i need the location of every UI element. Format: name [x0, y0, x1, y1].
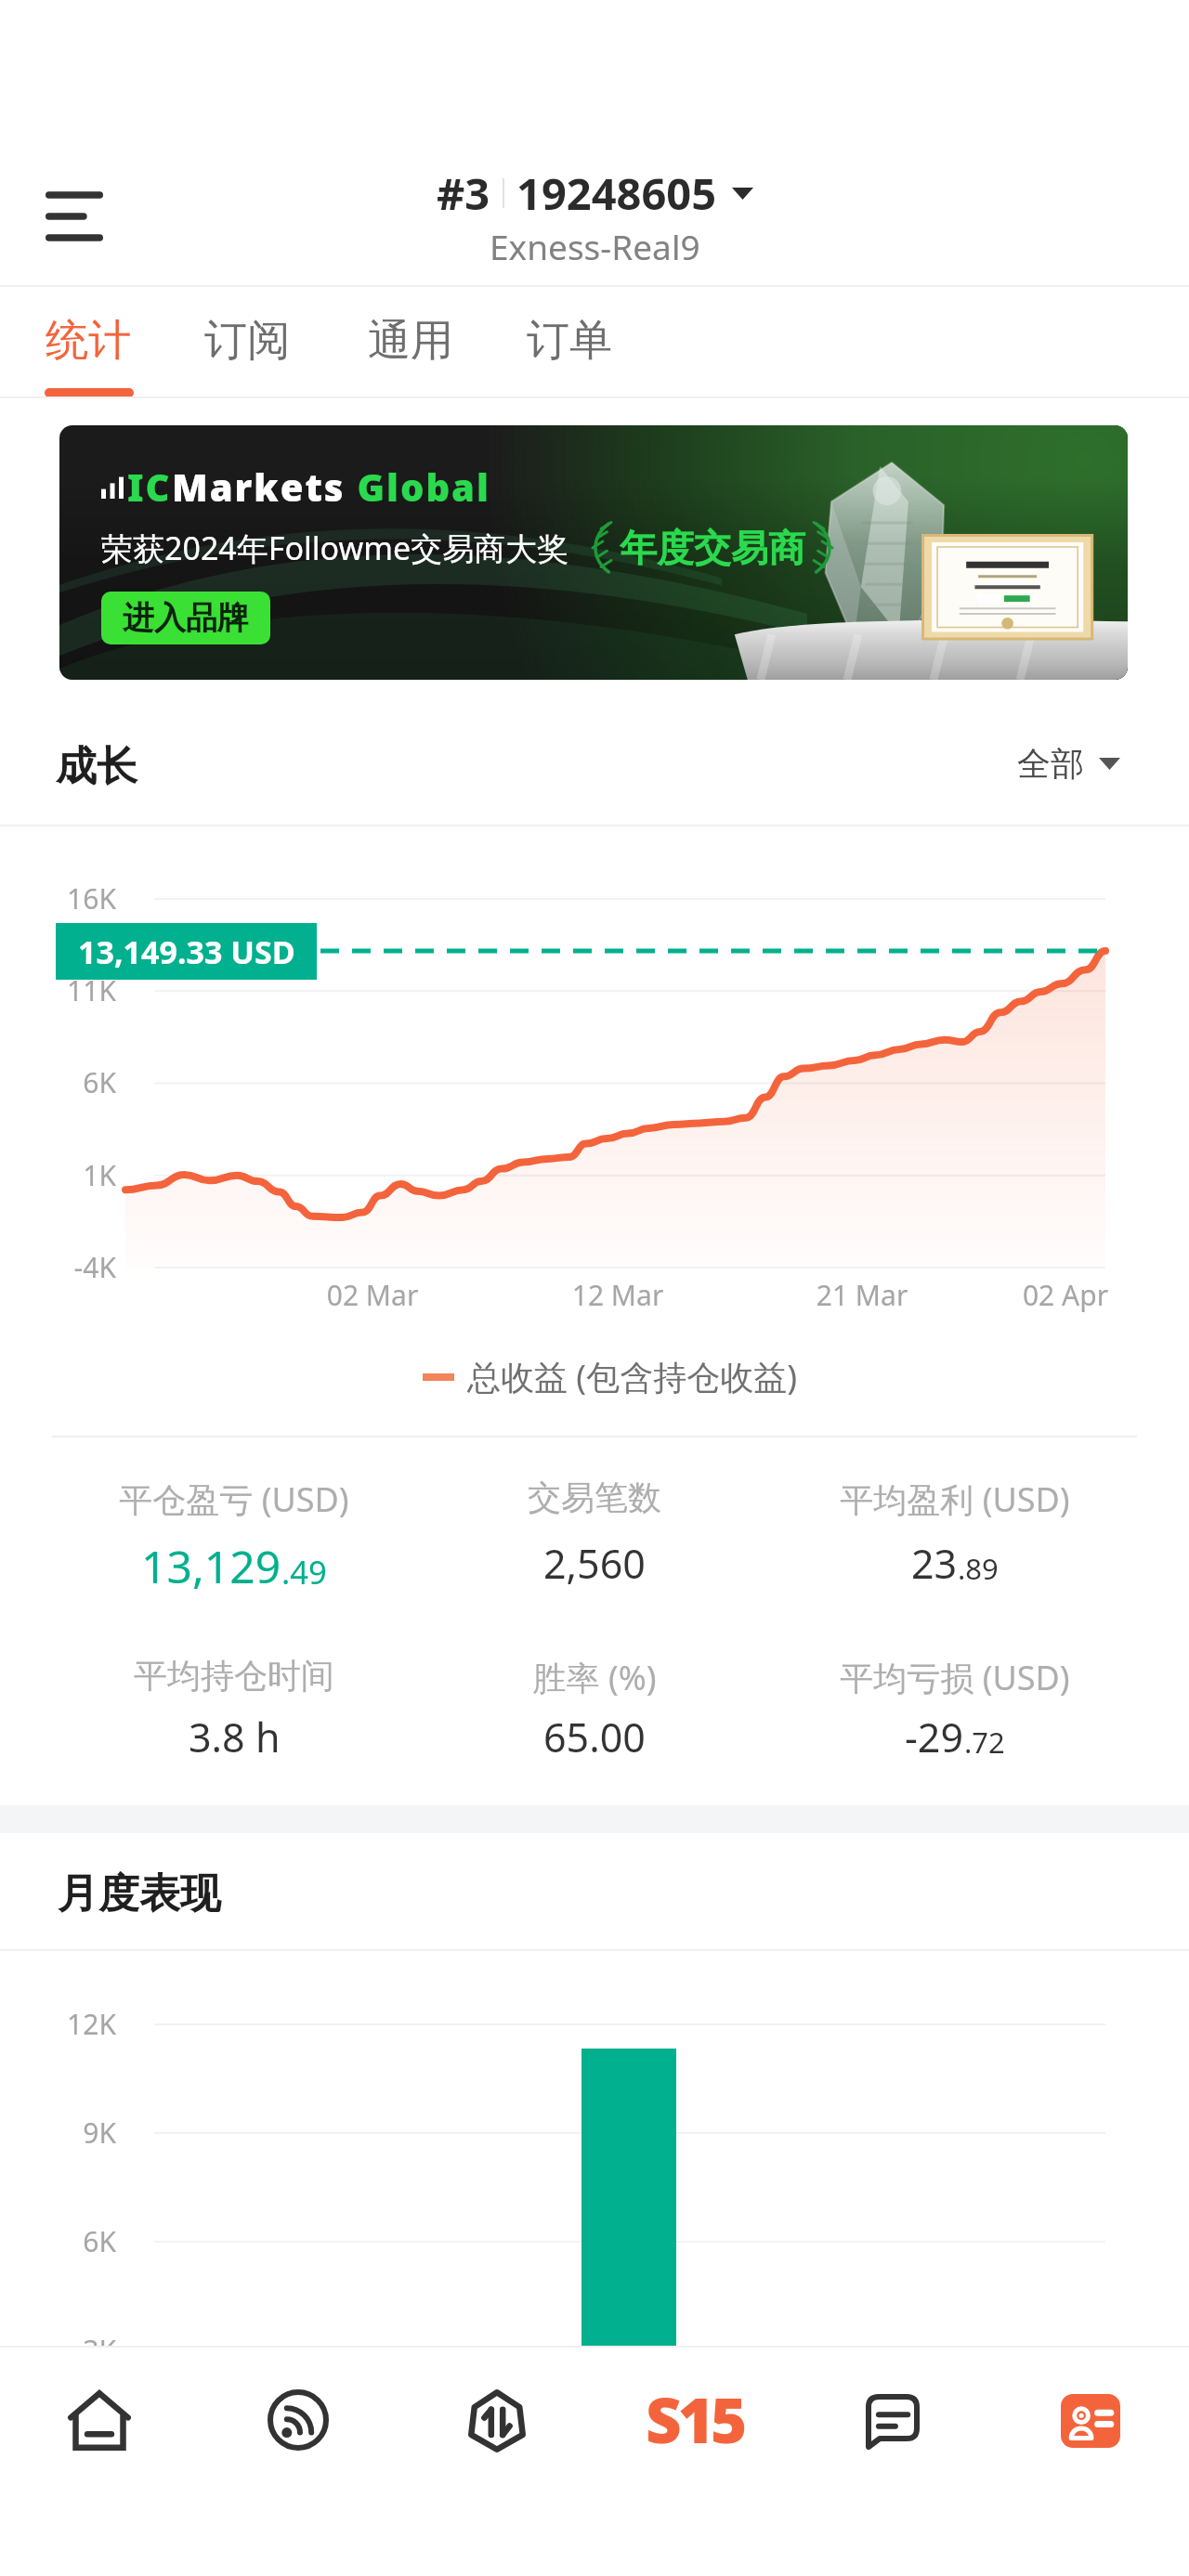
staticText: 订单: [527, 314, 612, 368]
button[interactable]: Messages: [793, 2346, 991, 2494]
staticText: 交易笔数: [409, 1477, 780, 1518]
staticText: 12 Mar: [534, 1276, 701, 1314]
staticText: 12K: [0, 2005, 116, 2043]
staticText: 13,149.33 USD: [78, 930, 295, 973]
staticText: 进入品牌: [123, 598, 249, 638]
staticText: 16K: [0, 879, 116, 917]
button[interactable]: Signals: [199, 2346, 398, 2494]
staticText: 6K: [0, 2222, 116, 2260]
staticText: .72: [964, 1723, 1005, 1762]
button[interactable]: #3: [0, 163, 1189, 269]
staticText: 9K: [0, 2114, 116, 2152]
staticText: 02 Apr: [982, 1276, 1149, 1314]
staticText: Global: [346, 462, 490, 512]
staticText: 6K: [0, 1063, 116, 1101]
staticText: .49: [281, 1550, 327, 1594]
staticText: 平均持仓时间: [48, 1655, 420, 1697]
staticText: 通用: [368, 314, 453, 368]
staticText: 平仓盈亏 (USD): [48, 1477, 420, 1522]
staticText: 成长: [56, 741, 137, 792]
staticText: S15: [646, 2376, 744, 2461]
button[interactable]: 进入品牌: [101, 592, 270, 644]
button[interactable]: 全部: [1017, 743, 1120, 785]
staticText: 21 Mar: [778, 1276, 946, 1314]
staticText: 3.8 h: [189, 1710, 281, 1764]
staticText: 荣获2024年Followme交易商大奖: [101, 527, 569, 569]
button[interactable]: 订阅: [182, 291, 312, 391]
staticText: Exness-Real9: [490, 223, 700, 269]
button[interactable]: 订单: [504, 291, 634, 391]
staticText: 订阅: [204, 314, 290, 368]
staticText: 11K: [0, 971, 116, 1009]
button[interactable]: IC: [59, 425, 1128, 680]
button[interactable]: Home: [0, 2346, 199, 2494]
staticText: 3K: [0, 2331, 116, 2369]
staticText: 统计: [46, 314, 131, 368]
staticText: Markets: [172, 462, 346, 512]
button[interactable]: 通用: [346, 291, 476, 391]
button[interactable]: Profile: [991, 2346, 1189, 2494]
staticText: 19248605: [516, 163, 717, 223]
staticText: 02 Mar: [289, 1276, 456, 1314]
button[interactable]: Menu: [28, 167, 121, 267]
staticText: IC: [127, 462, 172, 512]
button[interactable]: S15: [595, 2346, 793, 2494]
staticText: 2,560: [543, 1536, 646, 1591]
staticText: 总收益 (包含持仓收益): [467, 1354, 797, 1399]
staticText: 23: [911, 1536, 958, 1591]
staticText: 月度表现: [58, 1868, 221, 1919]
staticText: 全部: [1017, 743, 1084, 785]
staticText: .89: [958, 1549, 999, 1588]
staticText: 平均盈利 (USD): [769, 1477, 1141, 1522]
staticText: 胜率 (%): [409, 1655, 780, 1700]
button[interactable]: Trade: [398, 2346, 595, 2494]
staticText: 年度交易商: [620, 525, 805, 571]
staticText: 平均亏损 (USD): [769, 1655, 1141, 1700]
staticText: 65.00: [543, 1710, 646, 1764]
staticText: -29: [905, 1710, 964, 1764]
button[interactable]: 统计: [23, 291, 153, 391]
staticText: -4K: [0, 1248, 116, 1286]
staticText: 13,129: [141, 1536, 281, 1596]
staticText: 1K: [0, 1156, 116, 1194]
staticText: #3: [437, 163, 490, 223]
